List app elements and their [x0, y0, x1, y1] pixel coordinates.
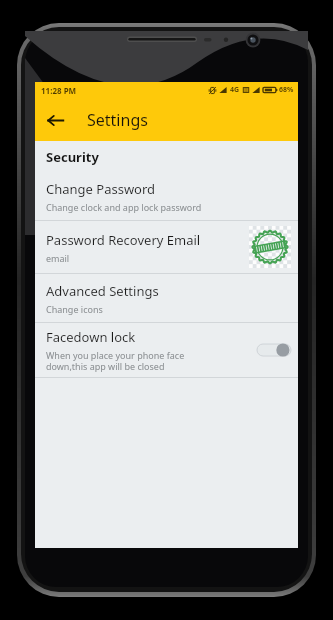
staticText: email: [46, 252, 70, 264]
staticText: Security: [46, 148, 99, 166]
button[interactable]: Password Recovery Email: [35, 221, 298, 273]
staticText: Facedown lock: [46, 328, 136, 346]
button[interactable]: Facedown lock: [35, 323, 298, 377]
staticText: 11:28 PM: [41, 85, 77, 96]
staticText: Advanced Settings: [46, 282, 159, 300]
staticText: Change Password: [46, 180, 156, 198]
staticText: Settings: [87, 109, 148, 131]
button[interactable]: Advanced Settings: [35, 274, 298, 322]
button[interactable]: Back: [40, 105, 70, 135]
staticText: When you place your phone face down,this…: [46, 349, 185, 372]
button[interactable]: Change Password: [35, 172, 298, 220]
staticText: 4G: [230, 85, 240, 95]
staticText: Password Recovery Email: [46, 231, 201, 249]
staticText: 68%: [279, 85, 294, 95]
staticText: Change icons: [46, 303, 103, 315]
staticText: Change clock and app lock password: [46, 201, 202, 213]
